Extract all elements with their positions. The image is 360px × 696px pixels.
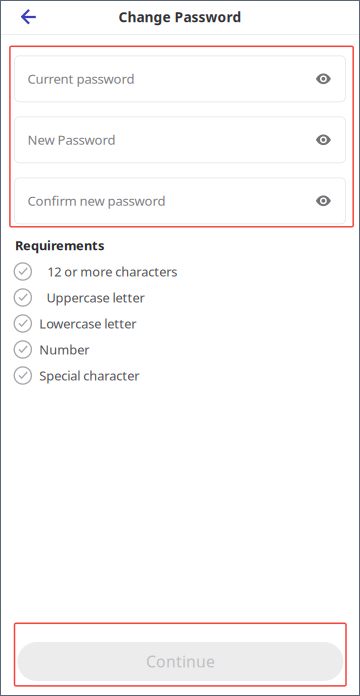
button[interactable]: Back	[0, 0, 57, 34]
button[interactable]: New Password	[14, 117, 345, 163]
staticText: Requirements	[15, 236, 104, 254]
button[interactable]: Confirm new password	[14, 178, 345, 224]
button[interactable]: Current password	[14, 56, 345, 102]
staticText: Current password	[27, 70, 134, 88]
staticText: 12 or more characters	[47, 263, 177, 280]
staticText: Change Password	[118, 8, 241, 26]
staticText: Uppercase letter	[47, 289, 145, 306]
staticText: Confirm new password	[27, 192, 165, 210]
staticText: Continue	[146, 651, 215, 672]
staticText: Special character	[39, 367, 139, 384]
staticText: Number	[39, 341, 89, 358]
button[interactable]: Continue	[17, 642, 343, 681]
staticText: New Password	[27, 131, 115, 149]
staticText: Lowercase letter	[39, 315, 136, 332]
